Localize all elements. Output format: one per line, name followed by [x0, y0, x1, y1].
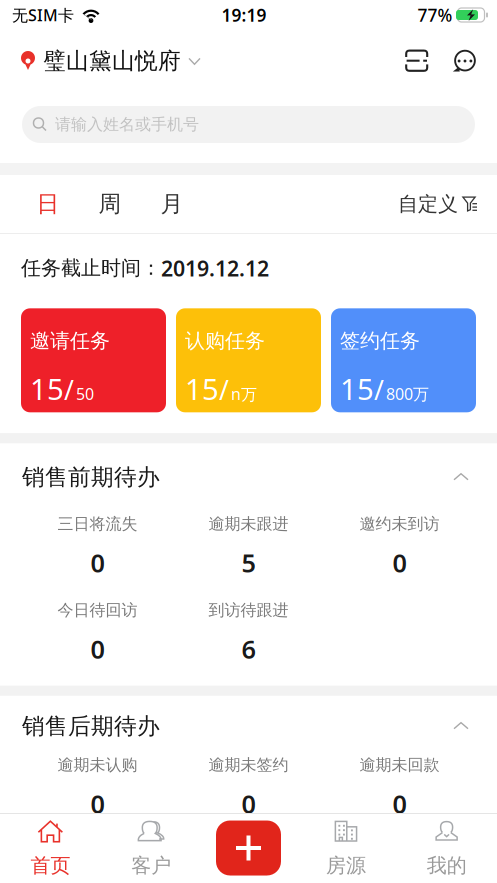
staticText: 逾期未回款: [359, 755, 439, 775]
staticText: 0: [90, 546, 104, 579]
staticText: 逾期未认购: [57, 755, 137, 775]
staticText: 逾期未签约: [208, 755, 288, 775]
staticText: 15: [340, 369, 374, 408]
button[interactable]: 今日待回访: [22, 600, 173, 666]
button[interactable]: 璧山黛山悦府: [20, 47, 201, 75]
staticText: 逾期未跟进: [208, 514, 288, 534]
staticText: 2019.12.12: [161, 254, 269, 282]
staticText: 5: [241, 546, 255, 579]
staticText: 销售前期待办: [22, 463, 160, 491]
staticText: 首页: [30, 853, 70, 878]
staticText: /: [374, 372, 384, 407]
staticText: 邀约未到访: [359, 514, 439, 534]
staticText: 到访待跟进: [208, 600, 288, 620]
staticText: 50: [76, 383, 94, 404]
button[interactable]: 三日将流失: [22, 514, 173, 579]
staticText: 三日将流失: [57, 514, 137, 534]
button[interactable]: Scan: [405, 49, 429, 73]
button[interactable]: Add: [216, 820, 281, 875]
button[interactable]: 周: [79, 175, 141, 233]
staticText: 认购任务: [185, 329, 265, 353]
button[interactable]: 逾期未签约: [173, 755, 324, 820]
button[interactable]: 邀约未到访: [324, 514, 475, 579]
button[interactable]: 逾期未跟进: [173, 514, 324, 579]
staticText: 0: [90, 632, 104, 666]
button[interactable]: 认购任务: [176, 308, 321, 412]
staticText: /: [219, 372, 229, 407]
staticText: 6: [241, 632, 255, 666]
button[interactable]: Collapse: [447, 715, 475, 738]
staticText: 15: [185, 369, 219, 408]
staticText: 璧山黛山悦府: [43, 47, 181, 75]
staticText: 签约任务: [340, 329, 420, 353]
staticText: 自定义: [398, 192, 458, 216]
button[interactable]: 客户: [101, 813, 202, 883]
staticText: 无SIM卡: [12, 4, 74, 26]
button[interactable]: 房源: [295, 813, 396, 883]
staticText: 800万: [386, 383, 429, 404]
button[interactable]: Collapse: [447, 466, 475, 489]
button[interactable]: 到访待跟进: [173, 600, 324, 666]
button[interactable]: 自定义: [398, 175, 478, 233]
staticText: n万: [231, 383, 257, 404]
button[interactable]: 逾期未认购: [22, 755, 173, 820]
staticText: 销售后期待办: [22, 712, 160, 740]
staticText: 月: [160, 190, 183, 218]
staticText: 周: [98, 190, 121, 218]
staticText: 0: [392, 546, 406, 579]
staticText: 0: [241, 787, 255, 820]
staticText: 19:19: [221, 3, 266, 26]
staticText: 0: [90, 787, 104, 820]
button[interactable]: 邀请任务: [21, 308, 166, 412]
staticText: 日: [36, 190, 59, 218]
staticText: 请输入姓名或手机号: [55, 115, 199, 134]
staticText: 0: [392, 787, 406, 820]
staticText: 邀请任务: [30, 329, 110, 353]
button[interactable]: 逾期未回款: [324, 755, 475, 820]
staticText: 77%: [417, 3, 452, 26]
staticText: 15: [30, 369, 64, 408]
button[interactable]: 首页: [0, 813, 101, 883]
staticText: 客户: [131, 853, 171, 878]
staticText: 今日待回访: [57, 600, 137, 620]
button[interactable]: 月: [141, 175, 203, 233]
staticText: /: [64, 372, 74, 407]
button[interactable]: Messages: [453, 49, 477, 73]
button[interactable]: 我的: [396, 813, 497, 883]
staticText: 任务截止时间：: [21, 256, 161, 280]
button[interactable]: 签约任务: [331, 308, 476, 412]
button[interactable]: 日: [17, 175, 79, 233]
staticText: 我的: [427, 853, 467, 878]
staticText: 房源: [326, 853, 366, 878]
